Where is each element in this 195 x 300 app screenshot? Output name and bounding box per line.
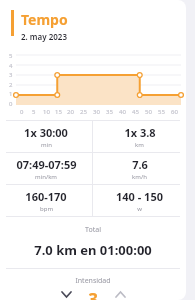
- staticText: 50: [145, 108, 152, 116]
- staticText: Total: [0, 225, 186, 235]
- staticText: min: [41, 141, 52, 149]
- staticText: 0: [20, 108, 24, 116]
- button[interactable]: 140 - 150: [93, 185, 186, 216]
- staticText: 5: [9, 52, 13, 60]
- staticText: 160-170: [25, 189, 67, 204]
- staticText: bpm: [40, 205, 53, 213]
- button[interactable]: 07:49-07:59: [0, 153, 92, 184]
- staticText: 1x 30:00: [24, 125, 68, 140]
- staticText: 1: [9, 90, 13, 98]
- staticText: 10: [43, 108, 50, 116]
- staticText: Tempo: [21, 10, 68, 29]
- staticText: 140 - 150: [116, 189, 163, 204]
- staticText: 0: [9, 100, 13, 108]
- staticText: 4: [9, 62, 13, 70]
- staticText: 20: [67, 108, 74, 116]
- staticText: 5: [32, 108, 36, 116]
- staticText: 45: [132, 108, 139, 116]
- staticText: 7.0 km en 01:00:00: [0, 241, 186, 259]
- staticText: 1x 3.8: [124, 125, 156, 140]
- staticText: km: [135, 141, 144, 149]
- staticText: 2. may 2023: [21, 31, 67, 42]
- staticText: 40: [119, 108, 126, 116]
- button[interactable]: 1x 3.8: [93, 121, 186, 152]
- button[interactable]: 1x 30:00: [0, 121, 92, 152]
- button[interactable]: 160-170: [0, 185, 92, 216]
- staticText: 35: [106, 108, 113, 116]
- button[interactable]: Increase intensity: [108, 288, 132, 300]
- staticText: min/km: [35, 173, 57, 181]
- staticText: 7.6: [132, 157, 148, 172]
- staticText: km/h: [132, 173, 147, 181]
- button[interactable]: 7.6: [93, 153, 186, 184]
- staticText: 25: [80, 108, 87, 116]
- staticText: 55: [158, 108, 165, 116]
- button[interactable]: Tempo: [11, 10, 186, 42]
- staticText: 30: [93, 108, 100, 116]
- staticText: 3: [9, 71, 13, 79]
- staticText: 07:49-07:59: [16, 157, 77, 172]
- staticText: 60: [171, 108, 178, 116]
- staticText: 2: [9, 81, 13, 89]
- staticText: Intensidad: [0, 276, 186, 286]
- staticText: w: [137, 205, 142, 213]
- staticText: 15: [55, 108, 62, 116]
- button[interactable]: Decrease intensity: [54, 288, 78, 300]
- staticText: 3: [88, 288, 98, 300]
